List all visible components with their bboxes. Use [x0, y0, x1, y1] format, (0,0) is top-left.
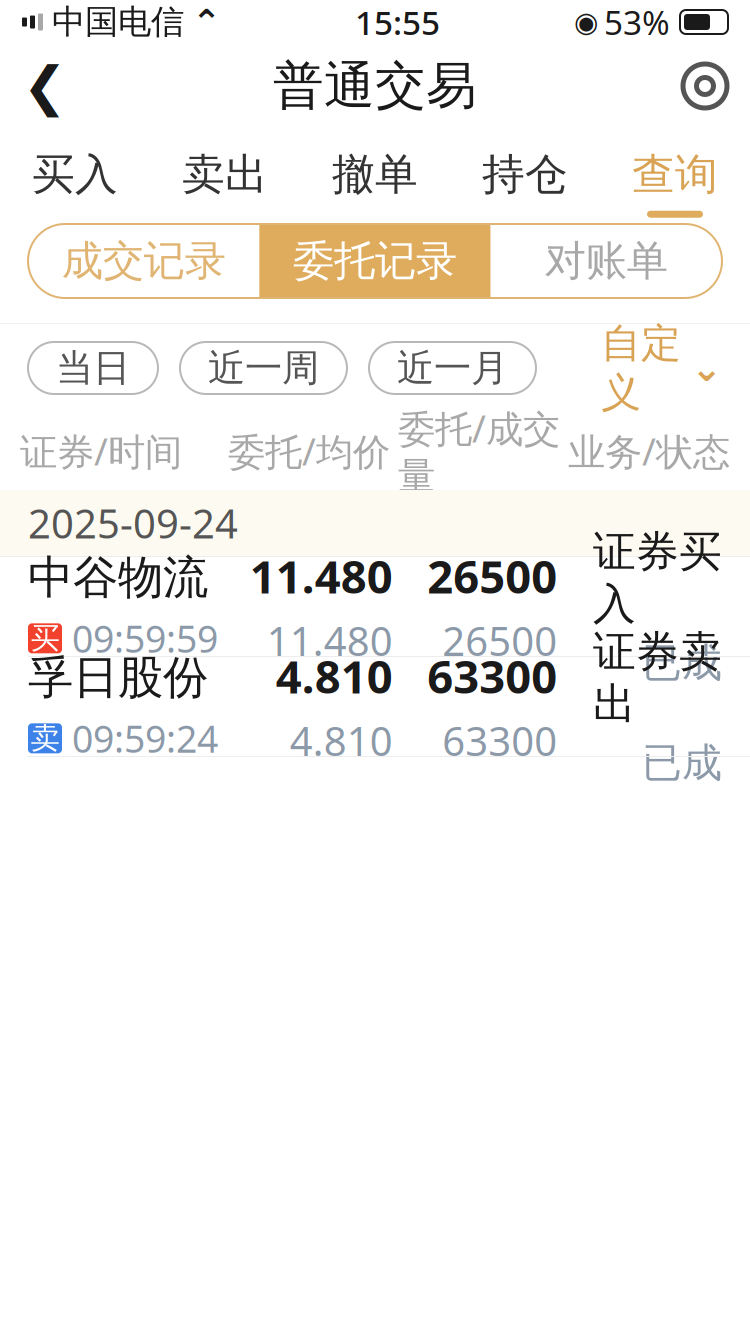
staticText: 自定义: [601, 319, 681, 417]
staticText: 证券/时间: [20, 426, 182, 476]
button[interactable]: 孚日股份: [0, 657, 750, 757]
staticText: 4.810: [290, 714, 393, 767]
button[interactable]: 返回: [0, 46, 90, 126]
staticText: 普通交易: [273, 55, 477, 117]
staticText: 09:59:59: [72, 614, 218, 663]
staticText: 26500: [427, 546, 557, 606]
staticText: 近一月: [397, 345, 508, 391]
staticText: 11.480: [267, 614, 393, 667]
staticText: 4.810: [276, 646, 393, 706]
button[interactable]: 成交记录: [28, 224, 259, 298]
staticText: 查询: [632, 148, 718, 201]
staticText: 63300: [427, 646, 557, 706]
button[interactable]: 近一周: [180, 342, 347, 394]
staticText: 持仓: [482, 148, 568, 201]
button[interactable]: 卖出: [150, 134, 300, 218]
staticText: 证券卖出: [593, 625, 722, 730]
staticText: ◉: [574, 6, 598, 38]
staticText: 证券买入: [593, 525, 722, 630]
staticText: 已成: [642, 738, 722, 787]
staticText: 当日: [56, 345, 130, 391]
staticText: 卖: [30, 720, 59, 756]
staticText: 63300: [442, 714, 557, 767]
staticText: 撤单: [332, 148, 418, 201]
staticText: 委托/均价: [228, 426, 390, 476]
staticText: 09:59:24: [72, 714, 218, 763]
staticText: ⌄: [691, 347, 722, 389]
button[interactable]: 近一月: [369, 342, 536, 394]
staticText: 买入: [32, 148, 118, 201]
staticText: 26500: [442, 614, 557, 667]
staticText: 15:55: [355, 0, 440, 44]
staticText: 成交记录: [62, 236, 226, 286]
staticText: ❮: [22, 56, 67, 116]
staticText: 委托记录: [293, 236, 457, 286]
staticText: 近一周: [208, 345, 319, 391]
button[interactable]: 设置: [660, 46, 750, 126]
button[interactable]: 撤单: [300, 134, 450, 218]
staticText: 2025-09-24: [28, 496, 238, 549]
button[interactable]: 对账单: [491, 224, 722, 298]
button[interactable]: 持仓: [450, 134, 600, 218]
staticText: 11.480: [250, 546, 393, 606]
staticText: ⌃: [192, 2, 221, 42]
button[interactable]: 查询: [600, 134, 750, 218]
staticText: 对账单: [545, 236, 668, 286]
staticText: 中国电信: [52, 1, 184, 42]
staticText: 买: [30, 620, 59, 656]
staticText: 已成: [642, 638, 722, 687]
staticText: 委托/成交量: [398, 403, 560, 499]
staticText: 中谷物流: [28, 550, 208, 606]
button[interactable]: 委托记录: [259, 224, 491, 298]
staticText: 业务/状态: [568, 426, 730, 476]
staticText: 卖出: [182, 148, 268, 201]
button[interactable]: 当日: [28, 342, 158, 394]
button[interactable]: 自定义: [601, 342, 722, 394]
staticText: 孚日股份: [28, 650, 208, 706]
button[interactable]: 买入: [0, 134, 150, 218]
button[interactable]: 中谷物流: [0, 557, 750, 657]
staticText: 53%: [604, 0, 670, 44]
